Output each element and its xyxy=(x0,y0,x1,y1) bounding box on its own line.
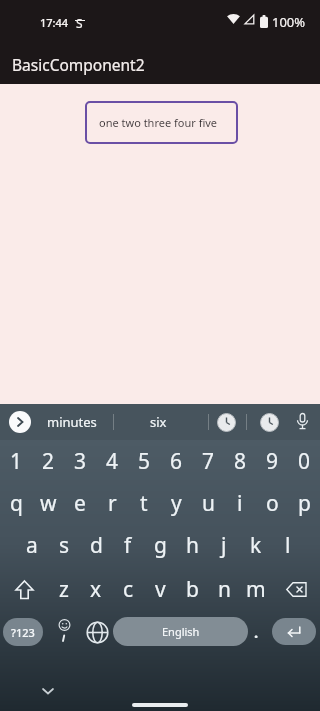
button[interactable]: v xyxy=(144,567,176,612)
button[interactable]: s xyxy=(48,524,80,567)
button[interactable]: 0 xyxy=(288,440,320,482)
staticText: v xyxy=(155,575,166,604)
button[interactable] xyxy=(132,703,188,707)
staticText: 6 xyxy=(170,447,183,476)
button[interactable]: x xyxy=(80,567,112,612)
button[interactable]: 3 xyxy=(64,440,96,482)
staticText: 2 xyxy=(42,447,55,476)
button[interactable]: 7 xyxy=(192,440,224,482)
staticText: k xyxy=(250,531,262,560)
staticText: BasicComponent2 xyxy=(12,54,145,75)
button[interactable]: i xyxy=(224,482,256,524)
staticText: 4 xyxy=(106,447,119,476)
staticText: minutes xyxy=(47,413,97,431)
button[interactable]: six xyxy=(131,404,186,440)
button[interactable] xyxy=(272,618,316,645)
button[interactable] xyxy=(217,413,236,432)
button[interactable] xyxy=(36,682,60,700)
button[interactable]: m xyxy=(240,567,272,612)
staticText: l xyxy=(285,531,291,560)
staticText: w xyxy=(40,489,57,518)
staticText: English xyxy=(162,624,200,639)
button[interactable]: u xyxy=(192,482,224,524)
button[interactable] xyxy=(272,567,320,612)
button[interactable]: English xyxy=(113,617,248,646)
staticText: q xyxy=(10,489,23,518)
staticText: d xyxy=(90,531,103,560)
staticText: i xyxy=(237,489,243,518)
button[interactable]: 6 xyxy=(160,440,192,482)
button[interactable]: p xyxy=(288,482,320,524)
button[interactable] xyxy=(260,413,279,432)
staticText: j xyxy=(221,531,227,560)
button[interactable]: b xyxy=(176,567,208,612)
button[interactable] xyxy=(296,413,309,431)
button[interactable]: d xyxy=(80,524,112,567)
button[interactable]: 8 xyxy=(224,440,256,482)
button[interactable] xyxy=(0,567,48,612)
staticText: 9 xyxy=(266,447,279,476)
button[interactable]: . xyxy=(248,615,264,649)
button[interactable]: r xyxy=(96,482,128,524)
button[interactable]: 2 xyxy=(32,440,64,482)
button[interactable]: y xyxy=(160,482,192,524)
staticText: y xyxy=(171,489,182,518)
button[interactable]: 1 xyxy=(0,440,32,482)
staticText: u xyxy=(202,489,215,518)
button[interactable]: t xyxy=(128,482,160,524)
staticText: b xyxy=(186,575,199,604)
staticText: o xyxy=(266,489,279,518)
button[interactable]: j xyxy=(208,524,240,567)
button[interactable]: h xyxy=(176,524,208,567)
staticText: m xyxy=(246,575,266,604)
button[interactable]: g xyxy=(144,524,176,567)
staticText: six xyxy=(150,413,167,431)
button[interactable] xyxy=(84,615,110,649)
button[interactable]: n xyxy=(208,567,240,612)
staticText: c xyxy=(123,575,134,604)
staticText: 1 xyxy=(10,447,23,476)
staticText: x xyxy=(90,575,102,604)
staticText: 0 xyxy=(298,447,311,476)
staticText: S xyxy=(76,15,83,31)
button[interactable]: l xyxy=(272,524,304,567)
button[interactable]: q xyxy=(0,482,32,524)
staticText: z xyxy=(59,575,69,604)
button[interactable]: f xyxy=(112,524,144,567)
staticText: r xyxy=(108,489,117,518)
staticText: 8 xyxy=(234,447,247,476)
staticText: e xyxy=(74,489,86,518)
button[interactable]: 5 xyxy=(128,440,160,482)
staticText: p xyxy=(298,489,311,518)
staticText: 3 xyxy=(74,447,87,476)
staticText: h xyxy=(186,531,199,560)
button[interactable]: e xyxy=(64,482,96,524)
button[interactable]: w xyxy=(32,482,64,524)
staticText: g xyxy=(154,531,167,560)
button[interactable]: o xyxy=(256,482,288,524)
staticText: n xyxy=(218,575,231,604)
staticText: f xyxy=(124,531,132,560)
button[interactable]: 4 xyxy=(96,440,128,482)
button[interactable]: c xyxy=(112,567,144,612)
button[interactable]: ?123 xyxy=(3,618,43,646)
button[interactable]: a xyxy=(16,524,48,567)
staticText: 17:44 xyxy=(40,15,69,30)
button[interactable]: k xyxy=(240,524,272,567)
button[interactable]: 9 xyxy=(256,440,288,482)
staticText: . xyxy=(254,622,259,642)
staticText: t xyxy=(140,489,148,518)
staticText: 5 xyxy=(138,447,151,476)
button[interactable]: one two three four five xyxy=(85,101,238,144)
button[interactable]: minutes xyxy=(38,404,105,440)
button[interactable]: z xyxy=(48,567,80,612)
staticText: ?123 xyxy=(11,625,35,640)
staticText: one two three four five xyxy=(99,115,218,130)
button[interactable] xyxy=(9,411,31,433)
staticText: 100% xyxy=(272,13,306,31)
staticText: 7 xyxy=(202,447,215,476)
staticText: a xyxy=(26,531,38,560)
staticText: s xyxy=(59,531,70,560)
button[interactable] xyxy=(50,615,78,649)
